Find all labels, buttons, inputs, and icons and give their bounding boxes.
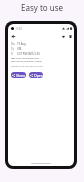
button[interactable]: Delete <box>67 33 74 40</box>
staticText: 3:57 PM GMT+5:30 <box>17 52 40 56</box>
staticText: Time <box>11 52 15 56</box>
staticText: Share <box>16 73 26 78</box>
staticText: Date <box>11 42 15 46</box>
button[interactable]: Back <box>10 33 17 40</box>
staticText: URL <box>17 47 22 51</box>
staticText: Open <box>34 73 43 78</box>
button[interactable]: Share <box>11 72 26 78</box>
staticText: 19 Aug <box>17 42 26 46</box>
staticText: URL: https://en.wikipedia.org/wiki/Andro… <box>11 57 43 63</box>
staticText: Scanned on 20 Aug 2024 at 5:57 PM <box>11 65 43 68</box>
staticText: Type <box>11 47 15 51</box>
staticText: Easy to use <box>0 2 84 13</box>
staticText: 9:30 <box>16 27 22 31</box>
button[interactable]: Favorite <box>60 33 67 40</box>
button[interactable]: Open <box>29 72 43 78</box>
